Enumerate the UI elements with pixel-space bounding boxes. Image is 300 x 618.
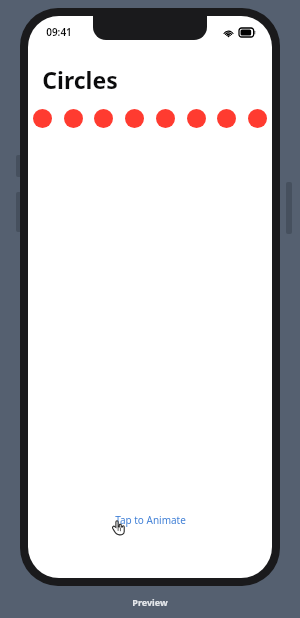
- button[interactable]: Tap to Animate: [28, 510, 272, 554]
- staticText: Tap to Animate: [115, 513, 186, 527]
- staticText: Preview: [132, 596, 168, 608]
- staticText: 09:41: [46, 25, 72, 39]
- staticText: Circles: [42, 64, 118, 95]
